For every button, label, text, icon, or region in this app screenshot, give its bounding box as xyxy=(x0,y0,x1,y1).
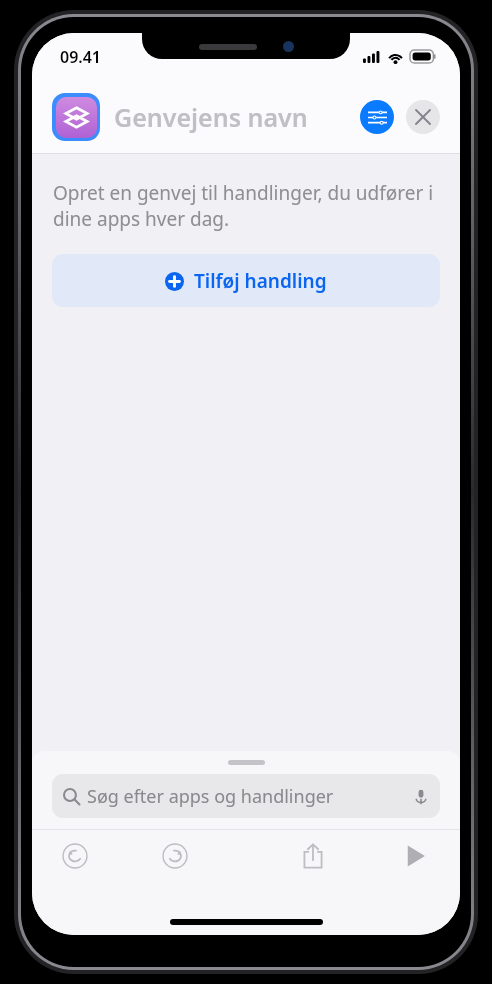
button[interactable]: Søg efter apps og handlinger xyxy=(52,774,440,818)
button[interactable]: Luk xyxy=(406,100,440,134)
staticText: Søg efter apps og handlinger xyxy=(87,784,413,809)
staticText: 09.41 xyxy=(60,46,102,68)
button[interactable]: Del xyxy=(292,835,334,877)
staticText: Opret en genvej til handlinger, du udfør… xyxy=(53,180,434,232)
button[interactable]: Gentag xyxy=(154,835,196,877)
button[interactable]: Indstillinger xyxy=(360,100,394,134)
button[interactable]: Vælg symbol xyxy=(52,93,100,141)
button[interactable]: Afspil xyxy=(394,835,436,877)
staticText: Genvejens navn xyxy=(114,100,360,134)
button[interactable]: Fortryd xyxy=(54,835,96,877)
staticText: Tilføj handling xyxy=(194,268,327,294)
button[interactable]: Tilføj handling xyxy=(52,254,440,307)
